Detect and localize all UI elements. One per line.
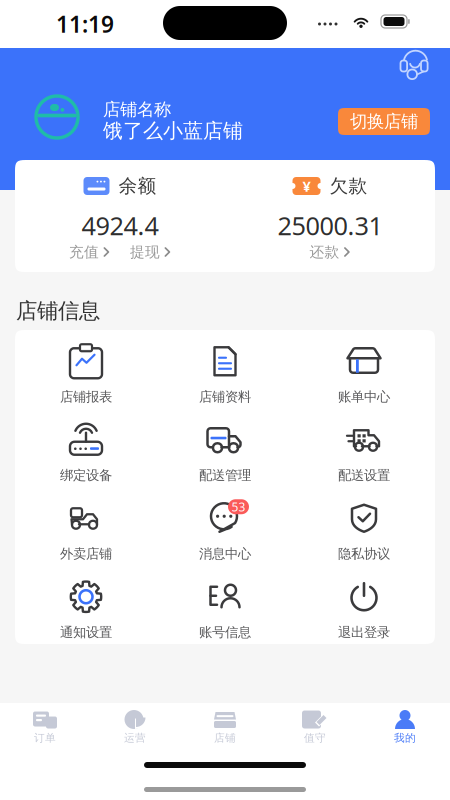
staticText: 53 [231, 499, 245, 515]
button[interactable]: 配送设置 [294, 412, 433, 491]
button[interactable]: 账单中心 [294, 334, 433, 412]
staticText: 账单中心 [338, 389, 390, 405]
button[interactable]: 店铺 [180, 703, 270, 755]
button[interactable]: 运营 [90, 703, 180, 755]
button[interactable]: 账号信息 [155, 569, 294, 648]
staticText: 提现 [130, 243, 160, 261]
button[interactable]: 客服 [394, 48, 438, 86]
staticText: 店铺资料 [199, 389, 251, 405]
staticText: 消息中心 [199, 546, 251, 562]
staticText: 饿了么小蓝店铺 [103, 118, 243, 143]
button[interactable]: 值守 [270, 703, 360, 755]
staticText: 店铺信息 [16, 298, 100, 324]
staticText: 配送管理 [199, 467, 251, 483]
button[interactable]: 订单 [0, 703, 90, 755]
staticText: 通知设置 [60, 624, 112, 640]
staticText: 隐私协议 [338, 546, 390, 562]
button[interactable]: 配送管理 [155, 412, 294, 491]
staticText: 退出登录 [338, 624, 390, 640]
staticText: 配送设置 [338, 467, 390, 483]
staticText: 店铺名称 [103, 99, 171, 120]
staticText: 外卖店铺 [60, 546, 112, 562]
staticText: 还款 [309, 243, 339, 261]
staticText: 25000.31 [277, 209, 382, 242]
staticText: 值守 [304, 731, 326, 744]
staticText: 订单 [34, 731, 56, 744]
button[interactable]: 提现 [130, 245, 171, 259]
staticText: 账号信息 [199, 624, 251, 640]
staticText: 欠款 [329, 174, 367, 197]
staticText: 切换店铺 [350, 111, 418, 132]
button[interactable]: 店铺资料 [155, 334, 294, 412]
button[interactable]: 还款 [309, 245, 350, 259]
button[interactable]: 切换店铺 [338, 108, 430, 135]
button[interactable]: 店铺报表 [16, 334, 155, 412]
button[interactable]: 充值 [69, 245, 110, 259]
staticText: 店铺报表 [60, 389, 112, 405]
button[interactable]: 通知设置 [16, 569, 155, 648]
staticText: 充值 [69, 243, 99, 261]
staticText: 我的 [394, 731, 416, 744]
staticText: ¥ [302, 176, 310, 196]
staticText: 11:19 [56, 9, 114, 39]
button[interactable]: 我的 [360, 703, 450, 755]
staticText: 余额 [118, 174, 156, 197]
staticText: 运营 [124, 731, 146, 744]
button[interactable]: 外卖店铺 [16, 491, 155, 569]
button[interactable]: 隐私协议 [294, 491, 433, 569]
button[interactable]: 绑定设备 [16, 412, 155, 491]
button[interactable]: 53 [155, 491, 294, 569]
button[interactable]: 退出登录 [294, 569, 433, 648]
staticText: 绑定设备 [60, 467, 112, 483]
staticText: 4924.4 [81, 209, 158, 242]
staticText: 店铺 [214, 731, 236, 744]
